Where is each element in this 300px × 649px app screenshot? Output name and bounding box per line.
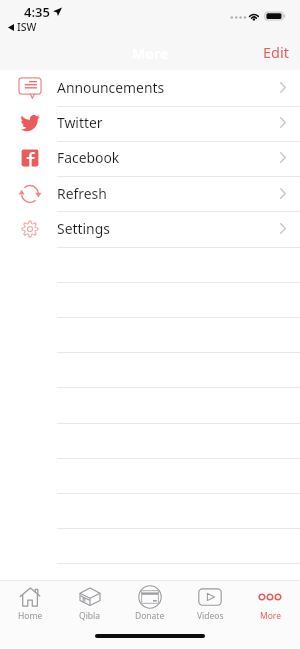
- staticText: Twitter: [57, 113, 103, 132]
- staticText: Qibla: [79, 610, 101, 622]
- button[interactable]: Facebook: [0, 140, 300, 175]
- button[interactable]: Twitter: [0, 105, 300, 140]
- staticText: Donate: [135, 610, 165, 622]
- staticText: 4:35: [24, 3, 50, 21]
- staticText: Facebook: [57, 148, 120, 167]
- staticText: ISW: [17, 20, 37, 34]
- button[interactable]: Edit: [252, 38, 300, 66]
- button[interactable]: Qibla: [60, 581, 120, 622]
- staticText: Edit: [263, 42, 289, 62]
- staticText: Refresh: [57, 184, 107, 203]
- staticText: Videos: [197, 610, 224, 622]
- staticText: Settings: [57, 219, 110, 238]
- button[interactable]: More: [240, 581, 300, 622]
- button[interactable]: Settings: [0, 211, 300, 246]
- staticText: Announcements: [57, 78, 165, 97]
- staticText: More: [260, 610, 281, 622]
- button[interactable]: Donate: [120, 581, 180, 622]
- button[interactable]: Home: [0, 581, 60, 622]
- staticText: Home: [18, 610, 43, 622]
- button[interactable]: Videos: [180, 581, 240, 622]
- button[interactable]: Refresh: [0, 176, 300, 211]
- staticText: More: [132, 44, 169, 63]
- button[interactable]: Announcements: [0, 70, 300, 105]
